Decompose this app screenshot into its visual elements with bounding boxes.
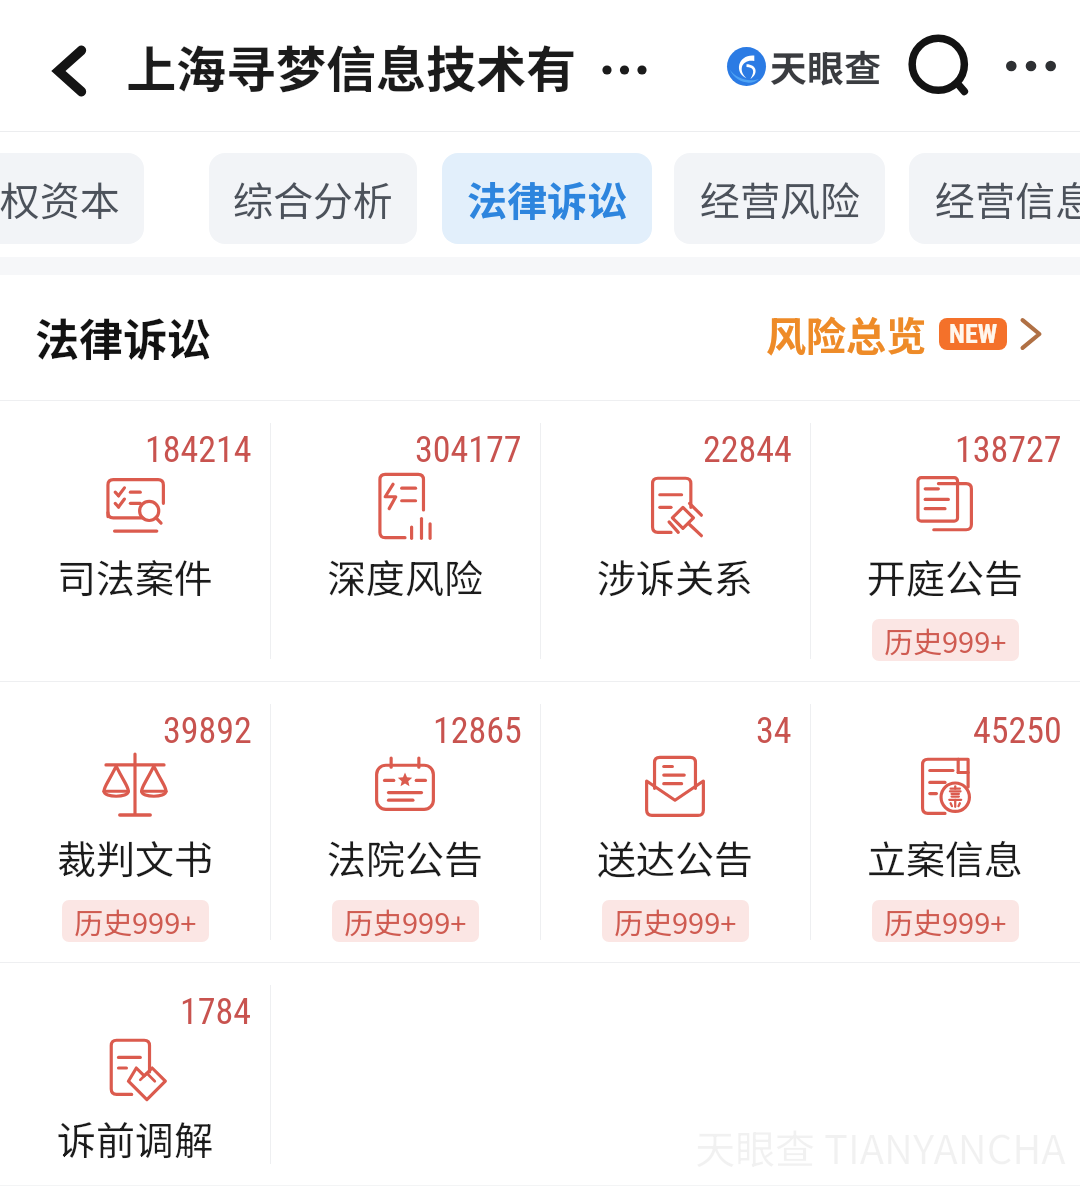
- staticText: 涉诉关系: [597, 548, 754, 604]
- staticText: 历史999+: [884, 900, 1007, 942]
- button[interactable]: 风险总览: [766, 305, 1049, 363]
- staticText: 历史999+: [884, 619, 1007, 661]
- button[interactable]: Tianyancha logo: [727, 39, 881, 93]
- button[interactable]: 39892: [0, 682, 270, 962]
- staticText: 历史999+: [614, 900, 737, 942]
- staticText: 天眼查 TIANYANCHA: [695, 1118, 1066, 1176]
- staticText: 34: [756, 710, 792, 752]
- button[interactable]: Search: [897, 23, 983, 109]
- staticText: 12865: [433, 710, 522, 752]
- staticText: 诉前调解: [57, 1110, 214, 1166]
- staticText: 历史999+: [344, 900, 467, 942]
- staticText: 经营风险: [700, 170, 860, 228]
- staticText: 天眼查: [770, 39, 881, 93]
- button[interactable]: 法律诉讼: [442, 153, 652, 244]
- staticText: 权资本: [0, 170, 120, 228]
- button[interactable]: 184214: [0, 401, 270, 681]
- staticText: 45250: [973, 710, 1062, 752]
- staticText: 经营信息: [935, 170, 1080, 228]
- staticText: 39892: [163, 710, 252, 752]
- staticText: 22844: [703, 429, 792, 471]
- staticText: 开庭公告: [867, 548, 1024, 604]
- staticText: 法律诉讼: [467, 170, 627, 228]
- button[interactable]: 304177: [270, 401, 540, 681]
- staticText: 立案信息: [867, 829, 1024, 885]
- button[interactable]: 经营风险: [674, 153, 885, 244]
- button[interactable]: Back: [0, 0, 126, 131]
- staticText: 风险总览: [766, 305, 926, 363]
- button[interactable]: 34: [540, 682, 810, 962]
- staticText: 138727: [955, 429, 1062, 471]
- staticText: 裁判文书: [57, 829, 214, 885]
- staticText: 司法案件: [57, 548, 214, 604]
- staticText: 法律诉讼: [35, 305, 211, 369]
- staticText: 深度风险: [327, 548, 484, 604]
- staticText: 304177: [415, 429, 522, 471]
- button[interactable]: 12865: [270, 682, 540, 962]
- staticText: 法院公告: [327, 829, 484, 885]
- staticText: 184214: [145, 429, 252, 471]
- button[interactable]: 1784: [0, 963, 270, 1186]
- staticText: 1784: [180, 991, 252, 1033]
- staticText: 送达公告: [597, 829, 754, 885]
- button[interactable]: 138727: [810, 401, 1080, 681]
- staticText: 历史999+: [74, 900, 197, 942]
- button[interactable]: 45250: [810, 682, 1080, 962]
- button[interactable]: 权资本: [0, 153, 144, 244]
- button[interactable]: 22844: [540, 401, 810, 681]
- staticText: 综合分析: [233, 170, 393, 228]
- staticText: 上海寻梦信息技术有: [126, 30, 576, 102]
- button[interactable]: More options: [988, 23, 1074, 109]
- button[interactable]: 综合分析: [209, 153, 417, 244]
- button[interactable]: 经营信息: [909, 153, 1080, 244]
- staticText: NEW: [949, 319, 998, 349]
